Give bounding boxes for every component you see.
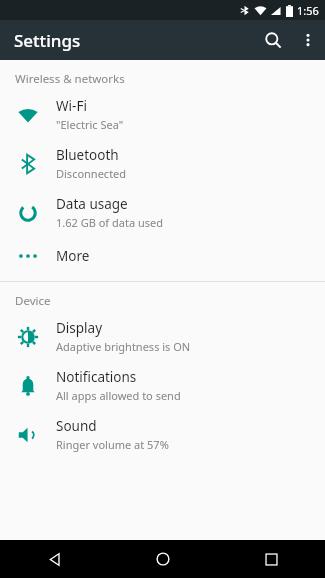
button[interactable]: Wi-Fi — [0, 90, 325, 139]
staticText: Notifications — [56, 368, 137, 386]
staticText: All apps allowed to send — [56, 388, 181, 403]
button[interactable]: Back — [0, 540, 109, 578]
button[interactable]: More options — [291, 23, 325, 57]
staticText: Data usage — [56, 195, 128, 213]
staticText: Settings — [14, 29, 81, 52]
staticText: Bluetooth — [56, 146, 119, 164]
staticText: Wi-Fi — [56, 97, 87, 115]
button[interactable]: Display — [0, 312, 325, 361]
staticText: 1.62 GB of data used — [56, 215, 163, 230]
staticText: Ringer volume at 57% — [56, 437, 169, 452]
button[interactable]: Sound — [0, 410, 325, 459]
staticText: Adaptive brightness is ON — [56, 339, 191, 354]
button[interactable]: Recent apps — [217, 540, 325, 578]
button[interactable]: Data usage — [0, 188, 325, 237]
staticText: Device — [15, 293, 51, 309]
staticText: Display — [56, 319, 103, 337]
button[interactable]: Bluetooth — [0, 139, 325, 188]
staticText: "Electric Sea" — [56, 117, 124, 132]
button[interactable]: Search — [255, 22, 291, 58]
staticText: More — [56, 247, 90, 265]
staticText: Sound — [56, 417, 97, 435]
staticText: Wireless & networks — [15, 71, 125, 87]
staticText: 1:56 — [297, 3, 319, 18]
button[interactable]: Notifications — [0, 361, 325, 410]
staticText: Disconnected — [56, 166, 127, 181]
button[interactable]: More — [0, 237, 325, 275]
button[interactable]: Home — [109, 540, 217, 578]
